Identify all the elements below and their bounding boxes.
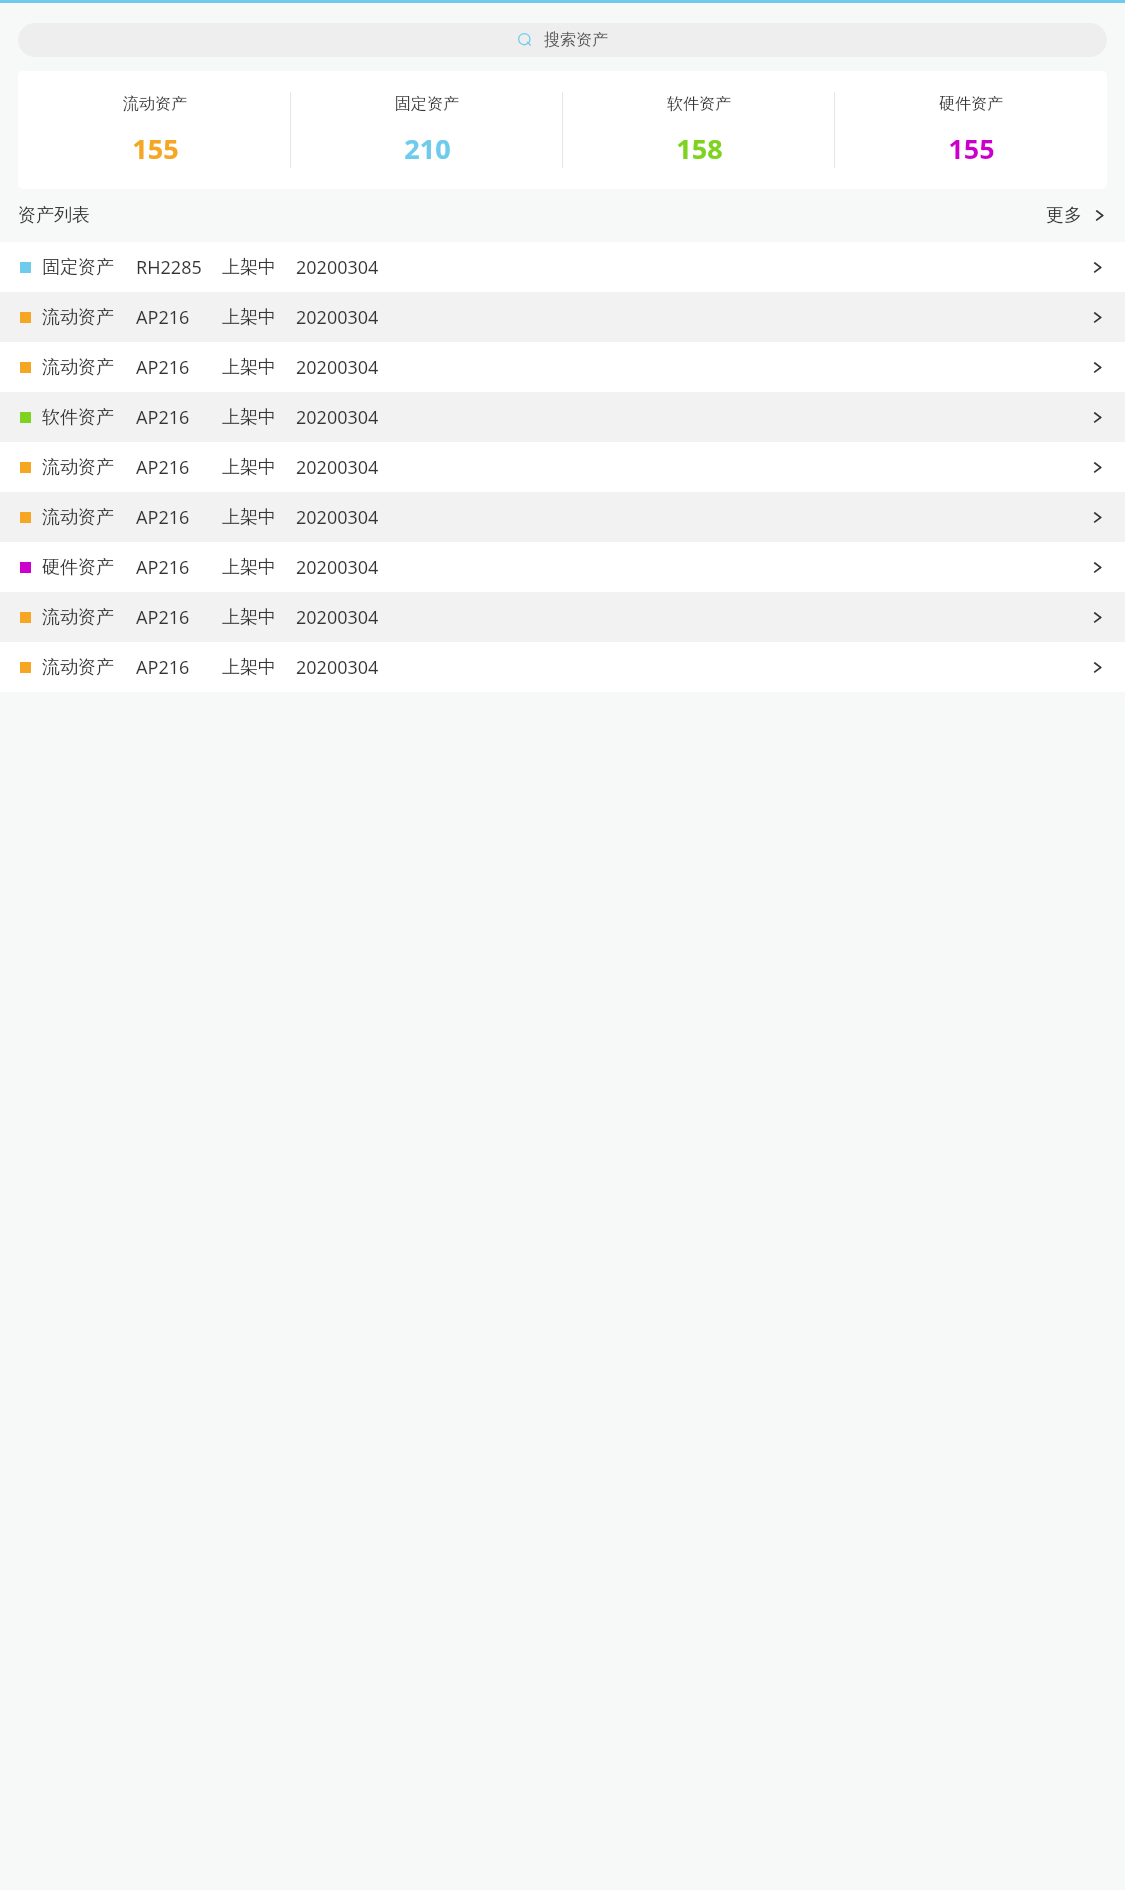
button[interactable]: 流动资产	[0, 642, 1125, 692]
button[interactable]: 硬件资产	[835, 71, 1107, 189]
staticText: AP216	[136, 555, 190, 580]
staticText: 20200304	[296, 255, 379, 280]
button[interactable]: 流动资产	[0, 492, 1125, 542]
staticText: 流动资产	[42, 356, 114, 379]
staticText: 20200304	[296, 455, 379, 480]
staticText: 硬件资产	[939, 94, 1003, 114]
staticText: 上架中	[222, 606, 276, 629]
staticText: 上架中	[222, 456, 276, 479]
button[interactable]: 流动资产	[0, 292, 1125, 342]
button[interactable]: 固定资产	[0, 242, 1125, 292]
staticText: 155	[132, 130, 179, 167]
button[interactable]: 软件资产	[563, 71, 835, 189]
staticText: 上架中	[222, 506, 276, 529]
staticText: RH2285	[136, 255, 202, 280]
button[interactable]: 更多	[1034, 198, 1107, 233]
staticText: 上架中	[222, 406, 276, 429]
staticText: 软件资产	[42, 406, 114, 429]
staticText: 20200304	[296, 555, 379, 580]
staticText: 固定资产	[395, 94, 459, 114]
staticText: 上架中	[222, 656, 276, 679]
staticText: 上架中	[222, 556, 276, 579]
button[interactable]: 流动资产	[0, 442, 1125, 492]
staticText: AP216	[136, 505, 190, 530]
staticText: 流动资产	[42, 656, 114, 679]
staticText: 155	[948, 130, 995, 167]
staticText: 上架中	[222, 306, 276, 329]
staticText: 流动资产	[42, 506, 114, 529]
staticText: 固定资产	[42, 256, 114, 279]
button[interactable]: 流动资产	[0, 592, 1125, 642]
staticText: 流动资产	[123, 94, 187, 114]
staticText: 流动资产	[42, 606, 114, 629]
button[interactable]: 流动资产	[0, 342, 1125, 392]
staticText: 20200304	[296, 655, 379, 680]
button[interactable]: 软件资产	[0, 392, 1125, 442]
staticText: 20200304	[296, 505, 379, 530]
staticText: 158	[676, 130, 723, 167]
staticText: AP216	[136, 455, 190, 480]
staticText: AP216	[136, 655, 190, 680]
staticText: 20200304	[296, 305, 379, 330]
staticText: AP216	[136, 405, 190, 430]
staticText: 流动资产	[42, 306, 114, 329]
staticText: 20200304	[296, 405, 379, 430]
staticText: 软件资产	[667, 94, 731, 114]
staticText: AP216	[136, 605, 190, 630]
staticText: AP216	[136, 355, 190, 380]
staticText: AP216	[136, 305, 190, 330]
staticText: 更多	[1046, 204, 1082, 227]
staticText: 硬件资产	[42, 556, 114, 579]
button[interactable]: 固定资产	[291, 71, 563, 189]
staticText: 20200304	[296, 355, 379, 380]
button[interactable]: 流动资产	[18, 71, 291, 189]
staticText: 搜索资产	[544, 30, 608, 50]
staticText: 210	[404, 130, 451, 167]
button[interactable]: 硬件资产	[0, 542, 1125, 592]
button[interactable]: 搜索资产	[18, 23, 1107, 57]
staticText: 上架中	[222, 256, 276, 279]
staticText: 资产列表	[18, 204, 90, 227]
staticText: 20200304	[296, 605, 379, 630]
staticText: 流动资产	[42, 456, 114, 479]
staticText: 上架中	[222, 356, 276, 379]
